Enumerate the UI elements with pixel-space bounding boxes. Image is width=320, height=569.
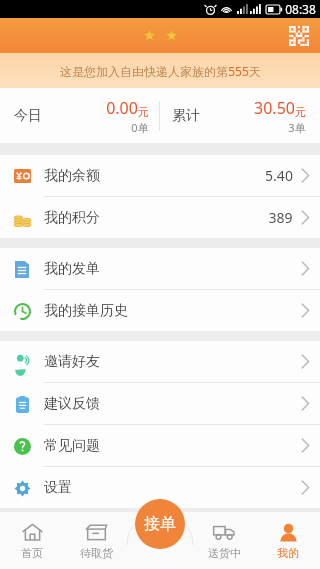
button[interactable]: 二维码 (289, 26, 309, 46)
staticText: 我的发单 (44, 260, 100, 278)
staticText: 0.00 (106, 97, 138, 119)
staticText: 待取货 (80, 546, 113, 560)
staticText: 接单 (144, 514, 176, 534)
staticText: 我的积分 (44, 209, 100, 227)
button[interactable]: 我的余额 (0, 155, 320, 196)
staticText: 我的接单历史 (44, 302, 128, 320)
staticText: 设置 (44, 479, 72, 497)
button[interactable]: 设置 (0, 467, 320, 508)
button[interactable]: 我的接单历史 (0, 290, 320, 331)
staticText: 送货中 (208, 546, 241, 560)
staticText: 元 (295, 105, 306, 119)
staticText: 邀请好友 (44, 353, 100, 371)
staticText: 30.50 (254, 97, 295, 119)
button[interactable]: 待取货 (64, 512, 128, 569)
staticText: 元 (138, 105, 149, 119)
staticText: 我的余额 (44, 167, 100, 185)
staticText: 08:38 (285, 1, 316, 17)
button[interactable]: 首页 (0, 512, 64, 569)
button[interactable]: 接单 (135, 499, 185, 549)
button[interactable]: 我的积分 (0, 197, 320, 238)
staticText: 首页 (21, 546, 43, 560)
button[interactable]: 建议反馈 (0, 383, 320, 424)
button[interactable]: 常见问题 (0, 425, 320, 466)
button[interactable]: 邀请好友 (0, 341, 320, 382)
staticText: 0单 (131, 120, 149, 135)
button[interactable]: 送货中 (192, 512, 256, 569)
staticText: 常见问题 (44, 437, 100, 455)
staticText: 389 (268, 208, 293, 227)
button[interactable]: 我的 (256, 512, 320, 569)
staticText: 555 (228, 63, 249, 79)
staticText: 建议反馈 (44, 395, 100, 413)
button[interactable]: 我的发单 (0, 248, 320, 289)
staticText: 累计 (172, 107, 200, 125)
staticText: 3单 (288, 120, 306, 135)
staticText: 这是您加入自由快递人家族的第 (60, 64, 228, 79)
staticText: 天 (249, 64, 261, 79)
staticText: 5.40 (265, 166, 293, 185)
staticText: 今日 (14, 107, 42, 125)
staticText: 我的 (277, 546, 299, 560)
